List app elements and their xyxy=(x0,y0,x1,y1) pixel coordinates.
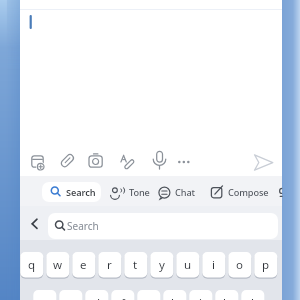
staticText: Tone xyxy=(129,186,150,199)
staticText: Compose xyxy=(228,186,269,199)
button[interactable]: e xyxy=(72,252,95,277)
button[interactable]: Chat xyxy=(171,182,199,202)
staticText: y xyxy=(159,257,165,273)
button[interactable]: f xyxy=(111,290,134,300)
staticText: j xyxy=(199,295,202,300)
button[interactable]: y xyxy=(150,252,173,277)
button[interactable] xyxy=(149,150,173,174)
button[interactable]: w xyxy=(46,252,69,277)
staticText: k xyxy=(223,295,230,300)
staticText: Search xyxy=(66,186,96,199)
button[interactable]: p xyxy=(254,252,277,277)
button[interactable]: h xyxy=(163,290,186,300)
staticText: t xyxy=(133,257,138,273)
button[interactable]: r xyxy=(98,252,121,277)
staticText: o xyxy=(236,257,243,273)
button[interactable]: d xyxy=(85,290,108,300)
button[interactable] xyxy=(115,150,139,174)
button[interactable]: u xyxy=(176,252,199,277)
staticText: e xyxy=(80,257,87,273)
staticText: p xyxy=(262,257,270,273)
button[interactable]: Tone xyxy=(126,182,152,202)
button[interactable] xyxy=(175,150,199,174)
button[interactable]: o xyxy=(228,252,251,277)
staticText: r xyxy=(107,257,112,273)
button[interactable]: Search xyxy=(61,182,101,202)
button[interactable] xyxy=(26,214,44,238)
staticText: q xyxy=(28,257,36,273)
staticText: h xyxy=(171,295,179,300)
staticText: Chat xyxy=(175,186,195,199)
button[interactable]: k xyxy=(215,290,238,300)
button[interactable] xyxy=(59,150,83,174)
button[interactable]: a xyxy=(33,290,56,300)
staticText: f xyxy=(121,295,125,300)
button[interactable] xyxy=(250,150,274,174)
staticText: u xyxy=(184,257,192,273)
staticText: w xyxy=(53,257,63,273)
button[interactable]: l xyxy=(241,290,264,300)
button[interactable]: i xyxy=(202,252,225,277)
button[interactable]: g xyxy=(137,290,160,300)
button[interactable] xyxy=(31,150,55,174)
button[interactable] xyxy=(87,150,111,174)
staticText: Search xyxy=(67,219,99,233)
button[interactable]: Compose xyxy=(222,182,274,202)
button[interactable]: j xyxy=(189,290,212,300)
button[interactable]: t xyxy=(124,252,147,277)
button[interactable] xyxy=(42,182,101,202)
staticText: i xyxy=(212,257,215,273)
staticText: l xyxy=(251,295,254,300)
button[interactable]: s xyxy=(59,290,82,300)
staticText: d xyxy=(93,295,101,300)
button[interactable]: q xyxy=(20,252,43,277)
button[interactable] xyxy=(48,213,278,239)
